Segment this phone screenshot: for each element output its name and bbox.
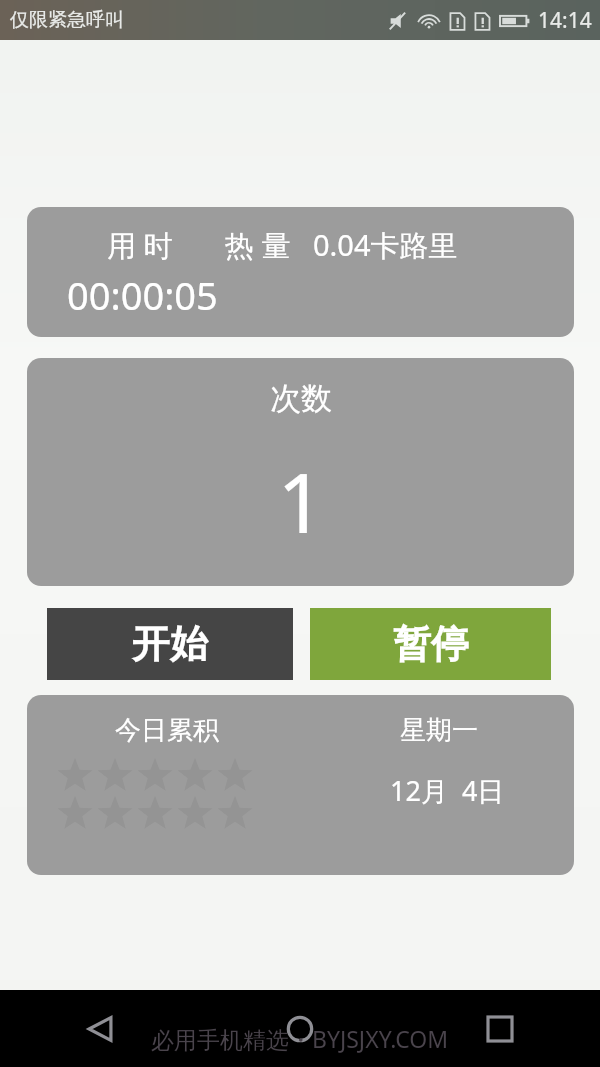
button[interactable]: 开始 bbox=[47, 608, 293, 680]
staticText: 0.04卡路里 bbox=[313, 225, 458, 265]
button[interactable]: 次数 bbox=[27, 358, 574, 586]
staticText: 14:14 bbox=[538, 6, 592, 35]
staticText: 1 bbox=[277, 444, 325, 557]
staticText: 00:00:05 bbox=[67, 269, 218, 321]
button[interactable]: Back bbox=[0, 990, 200, 1067]
staticText: 今日累积 bbox=[115, 714, 219, 747]
staticText: 用 时 bbox=[107, 225, 173, 265]
staticText: 热 量 bbox=[225, 225, 291, 265]
button[interactable]: 暂停 bbox=[310, 608, 551, 680]
staticText: 暂停 bbox=[393, 620, 469, 668]
staticText: 开始 bbox=[132, 620, 208, 668]
staticText: 必用手机精选・BYJSJXY.COM bbox=[151, 1023, 449, 1054]
button[interactable]: Recent apps bbox=[400, 990, 600, 1067]
staticText: 12月 4日 bbox=[390, 772, 505, 809]
button[interactable]: 今日累积 bbox=[27, 695, 574, 875]
button[interactable]: Home bbox=[200, 990, 400, 1067]
staticText: 仅限紧急呼叫 bbox=[10, 8, 124, 32]
staticText: 次数 bbox=[270, 379, 332, 418]
button[interactable]: 用 时 bbox=[27, 207, 574, 337]
staticText: 星期一 bbox=[400, 714, 478, 747]
